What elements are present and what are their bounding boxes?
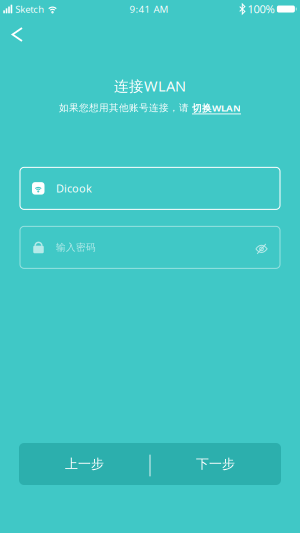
- staticText: 9:41 AM: [129, 2, 168, 16]
- staticText: Sketch: [15, 2, 44, 15]
- button[interactable]: Dicook: [20, 167, 280, 209]
- button[interactable]: Back: [0, 18, 36, 51]
- staticText: 上一步: [65, 456, 104, 472]
- button[interactable]: 切换WLAN: [192, 101, 241, 114]
- button[interactable]: 下一步: [150, 443, 281, 485]
- staticText: 输入密码: [56, 241, 96, 253]
- button[interactable]: 上一步: [19, 443, 150, 485]
- staticText: Dicook: [56, 181, 92, 196]
- button[interactable]: Show password: [250, 239, 270, 255]
- staticText: 如果您想用其他账号连接，请: [59, 102, 192, 114]
- staticText: 100%: [247, 1, 274, 17]
- staticText: 切换WLAN: [192, 101, 241, 114]
- staticText: 下一步: [196, 456, 235, 472]
- staticText: 连接WLAN: [114, 76, 186, 96]
